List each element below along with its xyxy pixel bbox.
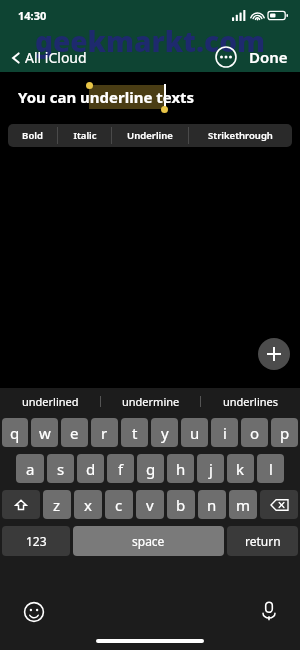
staticText: u xyxy=(190,423,200,443)
button[interactable]: d xyxy=(77,454,104,483)
staticText: c xyxy=(115,495,123,515)
button[interactable]: underlines xyxy=(201,388,300,414)
staticText: j xyxy=(209,459,213,479)
staticText: l xyxy=(269,459,273,479)
staticText: n xyxy=(207,495,217,515)
staticText: w xyxy=(39,423,51,443)
button[interactable]: Italic xyxy=(58,124,111,147)
staticText: s xyxy=(57,459,65,479)
button[interactable]: v xyxy=(136,490,164,519)
staticText: 14:30 xyxy=(18,8,47,23)
button[interactable]: Emoji xyxy=(24,602,44,622)
staticText: k xyxy=(236,459,245,479)
button[interactable]: p xyxy=(271,418,298,447)
staticText: z xyxy=(53,495,61,515)
staticText: undermine xyxy=(122,394,180,409)
staticText: o xyxy=(250,423,260,443)
staticText: underlined xyxy=(22,394,79,409)
button[interactable]: Voice input xyxy=(258,600,280,622)
button[interactable]: Done xyxy=(247,43,290,71)
button[interactable]: e xyxy=(61,418,88,447)
button[interactable]: j xyxy=(197,454,224,483)
button[interactable]: 123 xyxy=(2,526,70,556)
button[interactable]: Underline xyxy=(112,124,188,147)
button[interactable]: undermine xyxy=(101,388,200,414)
staticText: underlines xyxy=(223,394,279,409)
staticText: Italic xyxy=(73,129,97,142)
button[interactable]: Shift xyxy=(2,490,40,519)
staticText: Underline xyxy=(127,129,173,142)
staticText: r xyxy=(101,423,108,443)
button[interactable]: h xyxy=(167,454,194,483)
staticText: q xyxy=(10,423,20,443)
staticText: i xyxy=(223,423,227,443)
staticText: h xyxy=(176,459,186,479)
button[interactable]: Add xyxy=(258,338,290,370)
button[interactable]: Strikethrough xyxy=(189,124,292,147)
button[interactable]: y xyxy=(151,418,178,447)
button[interactable]: All iCloud xyxy=(6,44,91,71)
staticText: return xyxy=(245,533,281,549)
staticText: x xyxy=(84,495,92,515)
button[interactable]: o xyxy=(241,418,268,447)
staticText: All iCloud xyxy=(25,48,87,67)
staticText: You can underline texts xyxy=(18,87,195,107)
button[interactable]: m xyxy=(229,490,257,519)
staticText: t xyxy=(132,423,138,443)
button[interactable]: return xyxy=(227,526,298,556)
staticText: y xyxy=(161,423,169,443)
staticText: f xyxy=(118,459,124,479)
button[interactable]: i xyxy=(211,418,238,447)
button[interactable]: t xyxy=(121,418,148,447)
button[interactable]: space xyxy=(73,526,224,556)
button[interactable]: b xyxy=(167,490,195,519)
staticText: e xyxy=(70,423,79,443)
staticText: geekmarkt.com xyxy=(35,22,265,60)
button[interactable]: w xyxy=(31,418,58,447)
button[interactable]: g xyxy=(137,454,164,483)
staticText: p xyxy=(280,423,290,443)
button[interactable]: a xyxy=(16,454,44,483)
button[interactable]: c xyxy=(105,490,133,519)
button[interactable]: r xyxy=(91,418,118,447)
staticText: v xyxy=(146,495,154,515)
staticText: Strikethrough xyxy=(208,129,273,142)
button[interactable]: x xyxy=(74,490,102,519)
button[interactable]: underlined xyxy=(0,388,100,414)
staticText: b xyxy=(176,495,186,515)
button[interactable]: q xyxy=(2,418,28,447)
button[interactable]: z xyxy=(43,490,71,519)
staticText: space xyxy=(132,533,165,549)
button[interactable]: Bold xyxy=(8,124,57,147)
button[interactable]: l xyxy=(257,454,284,483)
staticText: d xyxy=(86,459,96,479)
staticText: Done xyxy=(249,47,288,67)
button[interactable]: Backspace xyxy=(260,490,298,519)
button[interactable]: n xyxy=(198,490,226,519)
staticText: m xyxy=(236,495,251,515)
button[interactable]: f xyxy=(107,454,134,483)
button[interactable]: k xyxy=(227,454,254,483)
button[interactable]: s xyxy=(47,454,74,483)
button[interactable]: More options xyxy=(215,46,237,68)
staticText: 123 xyxy=(26,533,47,549)
staticText: Bold xyxy=(22,129,43,142)
button[interactable]: u xyxy=(181,418,208,447)
staticText: g xyxy=(146,459,156,479)
staticText: a xyxy=(26,459,35,479)
